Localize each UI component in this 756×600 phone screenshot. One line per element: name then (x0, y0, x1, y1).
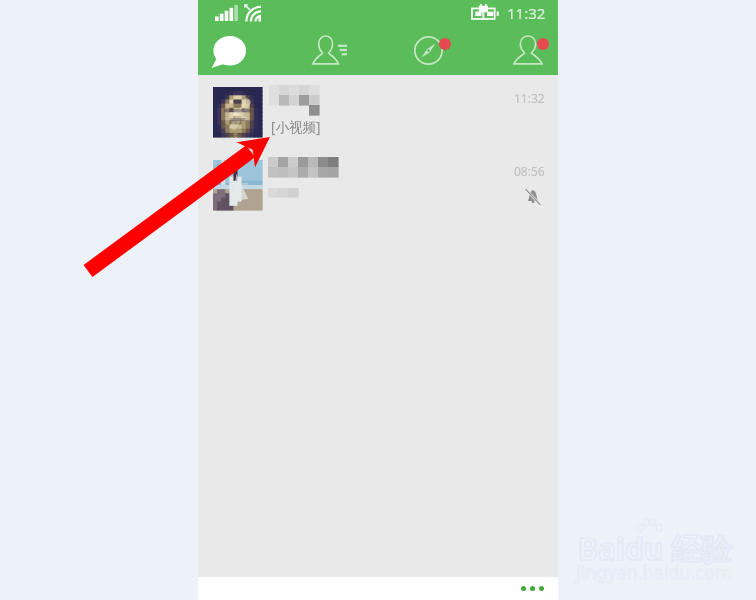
button[interactable]: 08:56 (198, 148, 558, 221)
staticText: 11:32 (507, 3, 546, 23)
button[interactable]: Contacts (288, 27, 378, 75)
button[interactable]: [小视频] (198, 75, 558, 148)
button[interactable]: Discover (378, 27, 468, 75)
button[interactable]: Me (468, 27, 558, 75)
button[interactable]: Chats (198, 27, 288, 75)
staticText: 08:56 (514, 163, 545, 179)
staticText: Baidu 经验 (578, 528, 732, 569)
staticText: [小视频] (271, 118, 321, 136)
staticText: 11:32 (514, 90, 545, 106)
